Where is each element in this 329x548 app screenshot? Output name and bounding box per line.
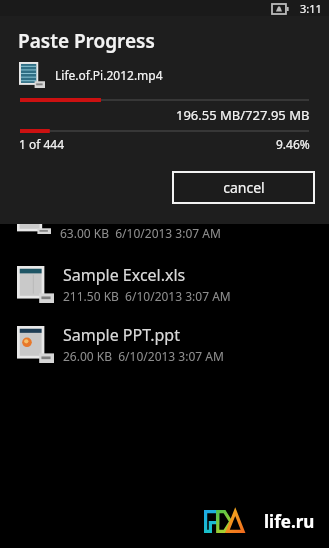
other: PDAlife logo	[204, 510, 262, 533]
button[interactable]: Sample Excel.xls	[0, 254, 329, 314]
staticText: 1 of 444	[19, 136, 65, 152]
button[interactable]: 63.00 KB 6/10/2013 3:07 AM	[0, 224, 329, 254]
staticText: 196.55 MB/727.95 MB	[176, 106, 310, 124]
button[interactable]: Sample PPT.ppt	[0, 314, 329, 374]
staticText: Life.of.Pi.2012.mp4	[55, 67, 163, 83]
button[interactable]: cancel	[172, 171, 315, 204]
staticText: 211.50 KB 6/10/2013 3:07 AM	[63, 288, 231, 304]
staticText: life.ru	[264, 510, 315, 533]
staticText: 9.46%	[276, 136, 310, 152]
other: Battery charging	[272, 4, 289, 14]
staticText: 26.00 KB 6/10/2013 3:07 AM	[63, 348, 224, 364]
staticText: cancel	[223, 178, 265, 197]
staticText: 3:11	[300, 1, 322, 16]
staticText: Sample Excel.xls	[63, 264, 186, 286]
staticText: Sample PPT.ppt	[63, 324, 180, 346]
staticText: Paste Progress	[18, 28, 155, 54]
staticText: 63.00 KB 6/10/2013 3:07 AM	[60, 225, 221, 241]
